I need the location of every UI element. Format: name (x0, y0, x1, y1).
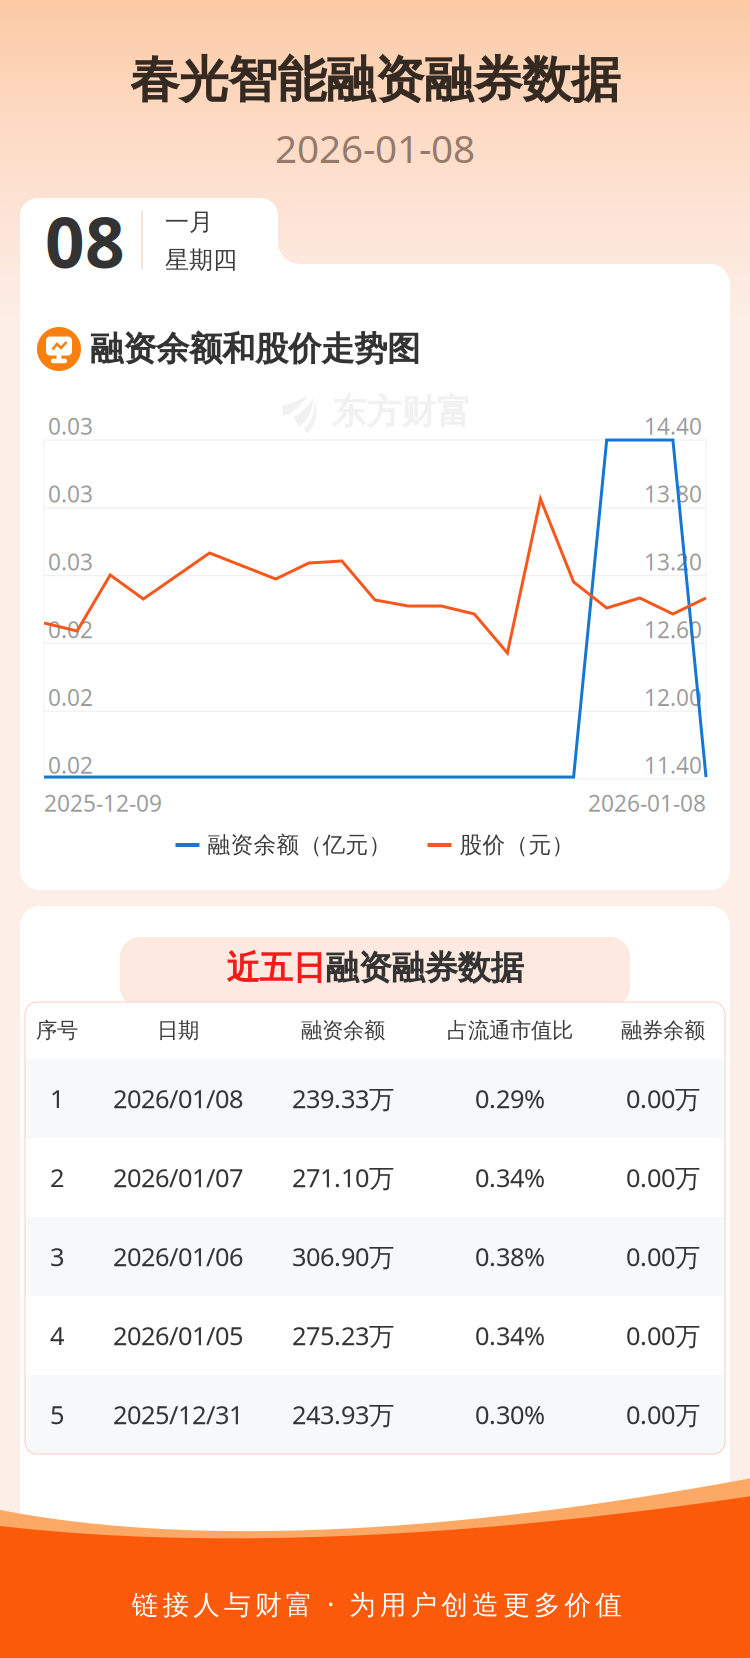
staticText: 0.00万 (626, 1398, 700, 1431)
staticText: 5 (50, 1398, 64, 1431)
staticText: 融资余额 (301, 1017, 385, 1044)
staticText: 一月 (165, 207, 213, 237)
staticText: 08 (45, 195, 125, 287)
staticText: 东方财富 (342, 1216, 498, 1264)
staticText: 0.03 (48, 546, 93, 577)
staticText: 2025-12-09 (44, 788, 162, 818)
staticText: 2025/12/31 (113, 1398, 243, 1431)
staticText: 0.29% (475, 1082, 545, 1115)
staticText: 0.02 (48, 614, 93, 644)
staticText: 链接人与财富 · 为用户创造更多价值 (132, 1586, 622, 1622)
button[interactable]: 4 (25, 1296, 725, 1375)
staticText: 243.93万 (292, 1398, 394, 1431)
staticText: 0.34% (475, 1319, 545, 1352)
staticText: 0.02 (48, 682, 93, 712)
staticText: 0.02 (48, 750, 93, 780)
staticText: 融资余额（亿元） (207, 831, 391, 859)
staticText: 近五日 (226, 947, 325, 988)
staticText: 12.60 (644, 614, 702, 644)
staticText: 0.00万 (626, 1319, 700, 1352)
button[interactable]: 3 (25, 1217, 725, 1296)
staticText: 占流通市值比 (447, 1017, 573, 1044)
staticText: 星期四 (165, 245, 237, 275)
staticText: 2026/01/07 (113, 1161, 243, 1194)
staticText: 275.23万 (292, 1319, 394, 1352)
staticText: 3 (50, 1240, 64, 1273)
staticText: 融券余额 (621, 1017, 705, 1044)
staticText: 春光智能融资融券数据 (130, 50, 620, 110)
staticText: 股价（元） (459, 831, 574, 859)
staticText: 融资融券数据 (325, 947, 523, 988)
staticText: 1 (50, 1082, 64, 1115)
button[interactable]: 5 (25, 1375, 725, 1454)
staticText: 东方财富 (331, 391, 471, 433)
staticText: 271.10万 (292, 1161, 394, 1194)
staticText: 2 (50, 1161, 64, 1194)
staticText: 融资余额和股价走势图 (90, 328, 420, 369)
staticText: 2026/01/06 (113, 1240, 243, 1273)
staticText: 0.00万 (626, 1082, 700, 1115)
staticText: 0.30% (475, 1398, 545, 1431)
staticText: 306.90万 (292, 1240, 394, 1273)
staticText: 0.00万 (626, 1161, 700, 1194)
staticText: 日期 (157, 1017, 199, 1044)
staticText: 4 (50, 1319, 64, 1352)
staticText: 14.40 (644, 411, 702, 441)
staticText: 2026-01-08 (275, 122, 475, 174)
staticText: 2026/01/05 (113, 1319, 243, 1352)
button[interactable]: 2 (25, 1138, 725, 1217)
staticText: 12.00 (644, 682, 702, 712)
staticText: 239.33万 (292, 1082, 394, 1115)
staticText: 13.20 (644, 546, 702, 577)
staticText: 11.40 (644, 750, 702, 780)
staticText: 0.00万 (626, 1240, 700, 1273)
staticText: 0.03 (48, 411, 93, 441)
staticText: 2026/01/08 (113, 1082, 243, 1115)
button[interactable]: 1 (25, 1059, 725, 1138)
staticText: 0.38% (475, 1240, 545, 1273)
staticText: 2026-01-08 (588, 788, 706, 818)
staticText: 序号 (36, 1017, 78, 1044)
staticText: 0.34% (475, 1161, 545, 1194)
staticText: 0.03 (48, 479, 93, 509)
staticText: 13.80 (644, 479, 702, 509)
